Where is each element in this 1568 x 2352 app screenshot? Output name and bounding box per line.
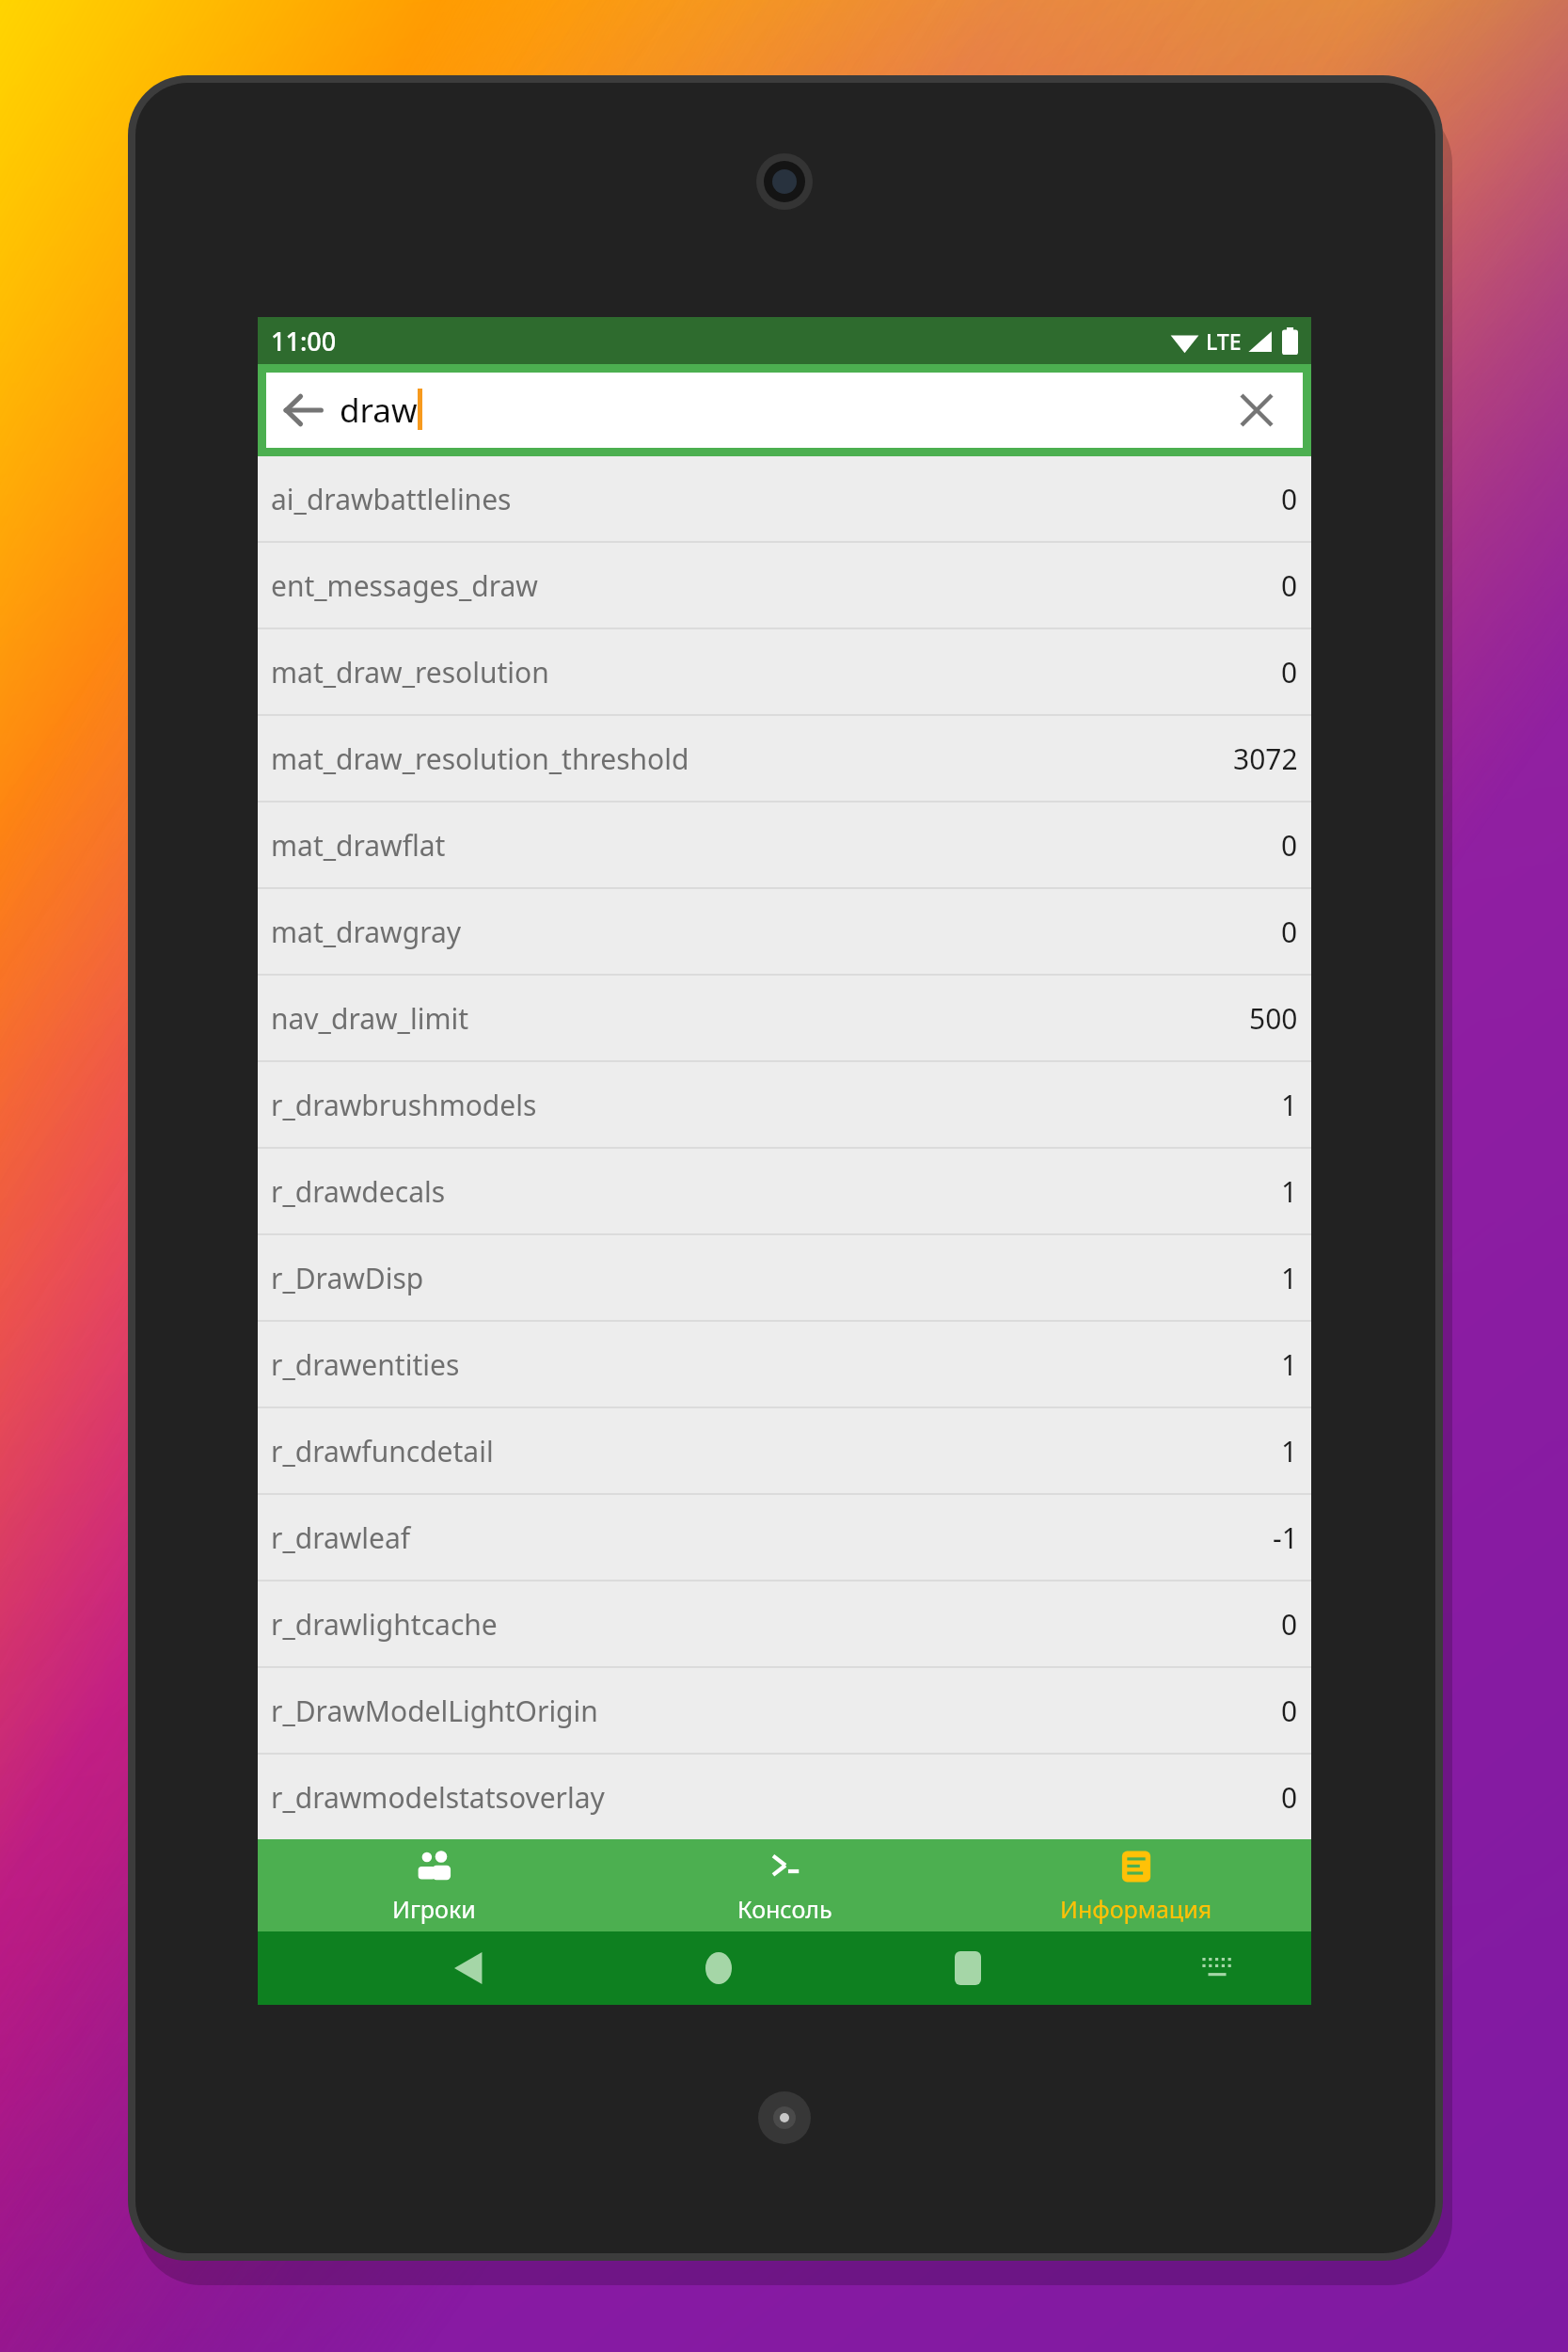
staticText: r_DrawModelLightOrigin <box>271 1692 598 1730</box>
button[interactable]: r_DrawDisp <box>258 1235 1311 1322</box>
button[interactable]: ai_drawbattlelines <box>258 456 1311 543</box>
button[interactable]: r_DrawModelLightOrigin <box>258 1668 1311 1755</box>
staticText: 1 <box>1281 1259 1298 1297</box>
staticText: 1 <box>1281 1345 1298 1384</box>
staticText: -1 <box>1273 1518 1298 1557</box>
staticText: nav_draw_limit <box>271 999 468 1038</box>
staticText: Игроки <box>392 1893 476 1925</box>
staticText: r_drawleaf <box>271 1518 411 1557</box>
staticText: 0 <box>1281 826 1298 865</box>
button[interactable]: Консоль <box>610 1839 960 1931</box>
button[interactable]: r_drawmodelstatsoverlay <box>258 1755 1311 1839</box>
staticText: 1 <box>1281 1086 1298 1124</box>
staticText: r_drawdecals <box>271 1172 446 1211</box>
staticText: 1 <box>1281 1432 1298 1470</box>
staticText: Информация <box>1060 1893 1212 1925</box>
staticText: r_drawentities <box>271 1345 460 1384</box>
button[interactable]: r_drawleaf <box>258 1495 1311 1581</box>
button[interactable]: r_drawbrushmodels <box>258 1062 1311 1149</box>
staticText: r_drawfuncdetail <box>271 1432 494 1470</box>
button[interactable]: Информация <box>960 1839 1311 1931</box>
staticText: draw <box>340 388 418 433</box>
staticText: 0 <box>1281 1692 1298 1730</box>
button[interactable]: mat_drawflat <box>258 803 1311 889</box>
button[interactable]: ent_messages_draw <box>258 543 1311 629</box>
button[interactable]: Игроки <box>258 1839 610 1931</box>
button[interactable]: nav_draw_limit <box>258 976 1311 1062</box>
button[interactable]: r_drawfuncdetail <box>258 1408 1311 1495</box>
staticText: LTE <box>1206 326 1242 356</box>
staticText: 0 <box>1281 1778 1298 1817</box>
button[interactable]: Clear search <box>1216 373 1297 448</box>
staticText: mat_draw_resolution <box>271 653 549 691</box>
staticText: mat_draw_resolution_threshold <box>271 739 689 778</box>
staticText: Консоль <box>737 1893 832 1925</box>
staticText: 1 <box>1281 1172 1298 1211</box>
staticText: 3072 <box>1233 739 1298 778</box>
staticText: 0 <box>1281 480 1298 518</box>
button[interactable]: r_drawdecals <box>258 1149 1311 1235</box>
button[interactable]: mat_draw_resolution_threshold <box>258 716 1311 803</box>
staticText: 500 <box>1249 999 1298 1038</box>
button[interactable]: Back <box>425 1931 512 2005</box>
staticText: ai_drawbattlelines <box>271 480 512 518</box>
staticText: ent_messages_draw <box>271 566 538 605</box>
staticText: r_drawbrushmodels <box>271 1086 537 1124</box>
button[interactable]: Back <box>266 373 340 448</box>
staticText: 11:00 <box>271 324 337 358</box>
button[interactable]: r_drawlightcache <box>258 1581 1311 1668</box>
button[interactable]: r_drawentities <box>258 1322 1311 1408</box>
staticText: mat_drawgray <box>271 913 462 951</box>
staticText: r_DrawDisp <box>271 1259 424 1297</box>
button[interactable]: mat_draw_resolution <box>258 629 1311 716</box>
staticText: mat_drawflat <box>271 826 446 865</box>
staticText: r_drawlightcache <box>271 1605 498 1644</box>
button[interactable]: mat_drawgray <box>258 889 1311 976</box>
staticText: 0 <box>1281 913 1298 951</box>
staticText: 0 <box>1281 566 1298 605</box>
staticText: r_drawmodelstatsoverlay <box>271 1778 605 1817</box>
button[interactable]: Recent apps <box>925 1931 1011 2005</box>
staticText: 0 <box>1281 653 1298 691</box>
button[interactable]: Switch keyboard <box>1174 1931 1260 2005</box>
staticText: 0 <box>1281 1605 1298 1644</box>
button[interactable]: Home <box>675 1931 762 2005</box>
